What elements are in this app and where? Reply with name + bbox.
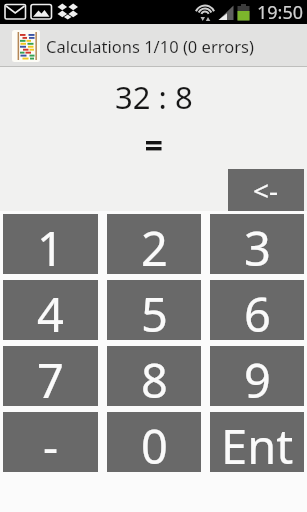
button[interactable]: 7 bbox=[3, 346, 98, 406]
staticText: 32 : 8 bbox=[115, 76, 193, 118]
staticText: 5 bbox=[141, 282, 168, 342]
staticText: <- bbox=[253, 171, 279, 209]
staticText: Ent bbox=[221, 414, 294, 474]
button[interactable]: <- bbox=[228, 169, 304, 211]
button[interactable]: 4 bbox=[3, 280, 98, 340]
button[interactable]: 0 bbox=[107, 412, 201, 472]
staticText: 8 bbox=[141, 348, 168, 408]
button[interactable]: - bbox=[3, 412, 98, 472]
staticText: 7 bbox=[37, 348, 64, 408]
staticText: 1 bbox=[37, 216, 64, 276]
staticText: 19:50 bbox=[257, 0, 304, 24]
staticText: 4 bbox=[37, 282, 64, 342]
staticText: - bbox=[43, 414, 59, 474]
button[interactable]: 1 bbox=[3, 214, 98, 274]
staticText: 6 bbox=[244, 282, 271, 342]
staticText: Calculations 1/10 (0 errors) bbox=[46, 35, 254, 57]
staticText: 9 bbox=[244, 348, 271, 408]
button[interactable]: Ent bbox=[210, 412, 304, 472]
staticText: 3 bbox=[244, 216, 271, 276]
button[interactable]: 5 bbox=[107, 280, 201, 340]
staticText: 2 bbox=[141, 216, 168, 276]
button[interactable]: 8 bbox=[107, 346, 201, 406]
staticText: 0 bbox=[141, 414, 168, 474]
button[interactable]: 3 bbox=[210, 214, 304, 274]
button[interactable]: 2 bbox=[107, 214, 201, 274]
button[interactable]: 6 bbox=[210, 280, 304, 340]
button[interactable]: 9 bbox=[210, 346, 304, 406]
